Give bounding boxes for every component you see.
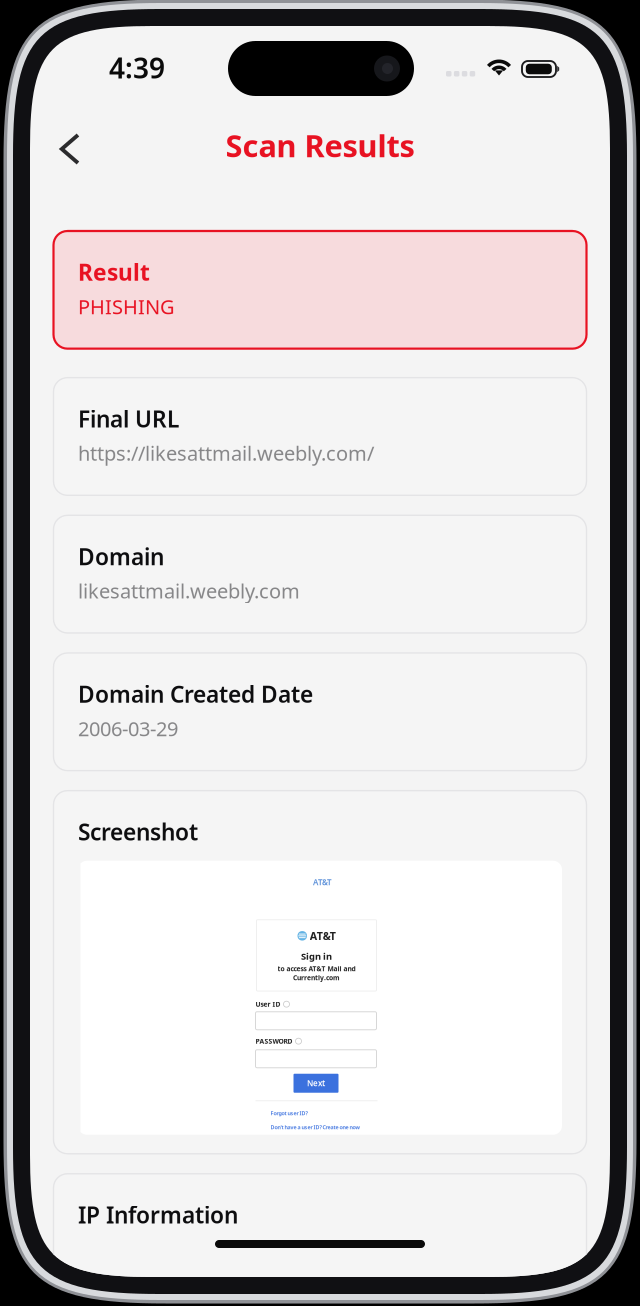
staticText: Final URL bbox=[78, 404, 179, 434]
staticText: 2006-03-29 bbox=[78, 715, 178, 742]
staticText: Result bbox=[78, 257, 150, 287]
staticText: Domain Created Date bbox=[78, 679, 313, 709]
staticText: User ID bbox=[255, 1000, 280, 1009]
staticText: Domain bbox=[78, 541, 164, 571]
staticText: PASSWORD bbox=[255, 1037, 292, 1046]
button[interactable]: Screenshot bbox=[53, 791, 586, 1154]
staticText: PHISHING bbox=[78, 293, 175, 320]
staticText: https://likesattmail.weebly.com/ bbox=[78, 440, 374, 466]
staticText: Don't have a user ID? Create one now bbox=[270, 1124, 359, 1131]
staticText: Scan Results bbox=[225, 125, 414, 166]
staticText: AT&T bbox=[310, 929, 336, 943]
staticText: Forgot user ID? bbox=[270, 1110, 307, 1117]
button[interactable]: Final URL bbox=[53, 378, 586, 495]
staticText: AT&T bbox=[313, 877, 332, 887]
staticText: Currently.com bbox=[293, 973, 340, 982]
button[interactable]: Domain bbox=[53, 515, 586, 633]
staticText: Screenshot bbox=[78, 817, 198, 847]
button[interactable]: Domain Created Date bbox=[53, 653, 586, 771]
staticText: likesattmail.weebly.com bbox=[78, 577, 300, 604]
button[interactable]: Result bbox=[53, 231, 586, 349]
staticText: 4:39 bbox=[109, 49, 165, 86]
staticText: to access AT&T Mail and bbox=[277, 964, 355, 973]
staticText: IP Information bbox=[78, 1200, 238, 1230]
button[interactable]: Back bbox=[42, 121, 98, 177]
staticText: Sign in bbox=[301, 950, 332, 962]
staticText: Next bbox=[307, 1078, 325, 1088]
button[interactable]: IP Information bbox=[53, 1174, 586, 1291]
